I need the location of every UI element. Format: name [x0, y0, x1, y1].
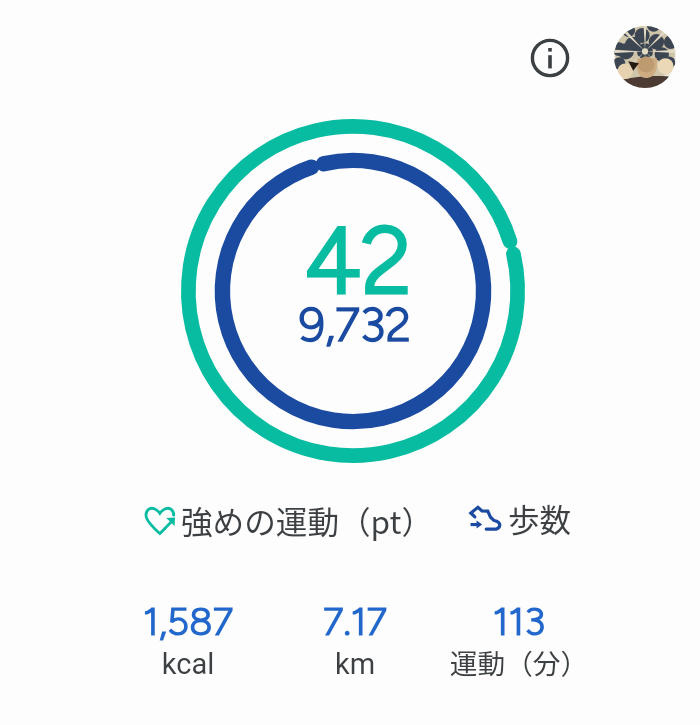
staticText: 113	[429, 598, 609, 644]
button[interactable]: 歩数	[468, 495, 572, 541]
staticText: km	[265, 647, 445, 681]
button[interactable]: Info	[524, 32, 576, 84]
button[interactable]: 113	[429, 598, 609, 694]
button[interactable]: Profile	[614, 26, 676, 88]
button[interactable]: 1,587	[98, 598, 278, 694]
staticText: 歩数	[508, 495, 572, 541]
staticText: 強めの運動（pt）	[181, 497, 434, 543]
staticText: 42	[258, 205, 458, 317]
staticText: 7.17	[265, 598, 445, 644]
staticText: 1,587	[98, 598, 278, 644]
staticText: 9,732	[255, 296, 455, 352]
staticText: kcal	[98, 647, 278, 681]
button[interactable]: 7.17	[265, 598, 445, 694]
staticText: 運動（分）	[429, 642, 609, 682]
button[interactable]: 強めの運動（pt）	[146, 497, 434, 543]
